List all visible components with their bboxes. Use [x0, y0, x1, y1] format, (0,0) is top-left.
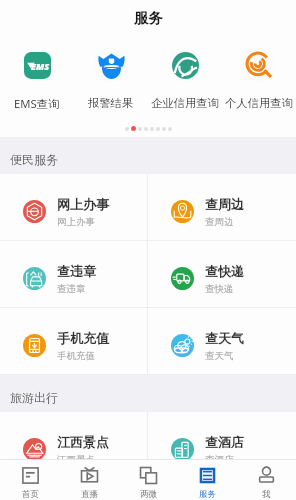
staticText: 江西景点 — [57, 454, 95, 466]
staticText: 查违章 — [57, 283, 86, 295]
staticText: EMS查询 — [14, 96, 60, 111]
staticText: 旅游出行 — [10, 390, 58, 405]
button[interactable]: 个人信用查询 — [222, 34, 296, 110]
staticText: 查违章 — [57, 263, 96, 279]
staticText: 网上办事 — [57, 196, 109, 212]
button[interactable]: 报警结果 — [74, 34, 148, 110]
staticText: EMS — [31, 60, 50, 72]
staticText: 便民服务 — [10, 152, 58, 167]
button[interactable]: 企业信用查询 — [148, 34, 222, 110]
staticText: 手机充值 — [57, 330, 109, 346]
staticText: 直播 — [81, 489, 98, 500]
staticText: 服务 — [199, 489, 216, 500]
staticText: 查酒店 — [205, 454, 234, 466]
staticText: 报警结果 — [88, 96, 134, 110]
button[interactable]: 直播 — [60, 460, 119, 500]
staticText: 查天气 — [205, 330, 244, 346]
button[interactable]: 查快递 — [148, 241, 296, 307]
staticText: 个人信用查询 — [225, 96, 293, 110]
button[interactable]: 两微 — [119, 460, 178, 500]
staticText: 查快递 — [205, 283, 234, 295]
staticText: 首页 — [22, 489, 39, 500]
staticText: 手机充值 — [57, 350, 95, 362]
staticText: 查周边 — [205, 216, 234, 228]
button[interactable]: 查周边 — [148, 174, 296, 240]
staticText: 查天气 — [205, 350, 234, 362]
staticText: 查周边 — [205, 196, 244, 212]
button[interactable]: 服务 — [178, 460, 237, 500]
button[interactable]: 首页 — [0, 460, 60, 500]
button[interactable]: 查违章 — [0, 241, 147, 307]
button[interactable]: 查酒店 — [148, 412, 296, 478]
button[interactable]: 查天气 — [148, 308, 296, 374]
staticText: 服务 — [134, 9, 163, 27]
staticText: 企业信用查询 — [151, 96, 219, 110]
button[interactable]: 江西景点 — [0, 412, 147, 478]
button[interactable]: 网上办事 — [0, 174, 147, 240]
staticText: 查酒店 — [205, 434, 244, 450]
button[interactable]: 手机充值 — [0, 308, 147, 374]
staticText: 查快递 — [205, 263, 244, 279]
staticText: 江西景点 — [57, 434, 109, 450]
staticText: 网上办事 — [57, 216, 95, 228]
staticText: 两微 — [140, 489, 157, 500]
button[interactable]: EMS — [0, 34, 74, 111]
staticText: 我 — [262, 489, 271, 500]
button[interactable]: 我 — [237, 460, 296, 500]
